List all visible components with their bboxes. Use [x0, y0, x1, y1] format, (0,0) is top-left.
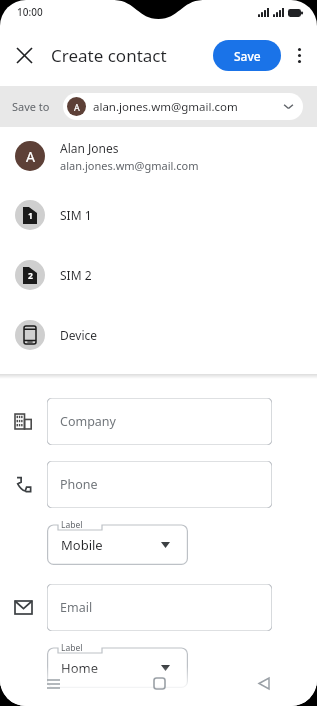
staticText: Label [61, 519, 83, 531]
staticText: Phone [60, 476, 98, 493]
button[interactable]: Label [47, 642, 188, 688]
button[interactable]: Label [47, 519, 188, 565]
staticText: 2 [28, 270, 33, 282]
button[interactable]: Recents [33, 666, 73, 701]
button[interactable]: Save [213, 40, 281, 71]
button[interactable]: Phone [47, 461, 272, 508]
staticText: alan.jones.wm@gmail.com [93, 99, 283, 115]
button[interactable]: More options [283, 39, 315, 71]
button[interactable]: Back [244, 666, 284, 701]
button[interactable]: Email [47, 584, 272, 631]
staticText: Label [61, 642, 83, 654]
button[interactable]: 2 [0, 245, 317, 305]
staticText: Home [61, 659, 98, 677]
button[interactable]: A [0, 127, 317, 185]
staticText: Create contact [51, 44, 167, 67]
button[interactable]: Close [6, 37, 42, 73]
staticText: Device [60, 327, 98, 343]
staticText: SIM 2 [60, 267, 92, 283]
staticText: Save [234, 48, 261, 64]
staticText: SIM 1 [60, 207, 92, 223]
staticText: 1 [28, 210, 33, 222]
staticText: A [74, 101, 80, 113]
staticText: A [26, 147, 35, 166]
staticText: Company [60, 413, 116, 430]
button[interactable]: Home [139, 666, 179, 701]
button[interactable]: Company [47, 398, 272, 445]
staticText: Save to [12, 99, 50, 114]
staticText: Mobile [61, 536, 103, 554]
staticText: Alan Jones [60, 140, 119, 156]
button[interactable]: Device [0, 305, 317, 365]
button[interactable]: 1 [0, 185, 317, 245]
staticText: Email [60, 599, 93, 616]
button[interactable]: A [63, 93, 303, 120]
staticText: alan.jones.wm@gmail.com [60, 158, 199, 173]
staticText: 10:00 [17, 5, 43, 19]
